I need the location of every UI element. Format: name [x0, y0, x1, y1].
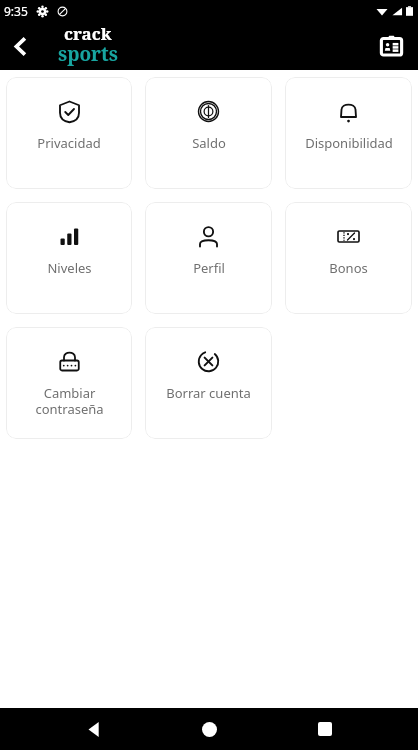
button[interactable]: Back: [0, 26, 40, 66]
button[interactable]: Membership card: [370, 25, 412, 67]
staticText: Borrar cuenta: [166, 384, 251, 402]
button[interactable]: Recent apps: [303, 708, 347, 750]
staticText: Privacidad: [37, 134, 101, 152]
button[interactable]: Back: [72, 708, 116, 750]
button[interactable]: Disponibilidad: [285, 77, 412, 189]
staticText: crack: [64, 22, 112, 45]
button[interactable]: Privacidad: [6, 77, 132, 189]
button[interactable]: Bonos: [285, 202, 412, 314]
staticText: Perfil: [193, 259, 225, 277]
staticText: Saldo: [192, 134, 226, 152]
button[interactable]: Niveles: [6, 202, 132, 314]
staticText: sports: [58, 41, 118, 66]
button[interactable]: Home: [187, 708, 231, 750]
staticText: Niveles: [47, 259, 92, 277]
staticText: Bonos: [329, 259, 368, 277]
staticText: Cambiar contraseña: [35, 384, 104, 417]
button[interactable]: Cambiar contraseña: [6, 327, 132, 439]
button[interactable]: Saldo: [145, 77, 272, 189]
staticText: Disponibilidad: [305, 134, 393, 152]
button[interactable]: Borrar cuenta: [145, 327, 272, 439]
staticText: 9:35: [4, 3, 28, 19]
button[interactable]: Perfil: [145, 202, 272, 314]
